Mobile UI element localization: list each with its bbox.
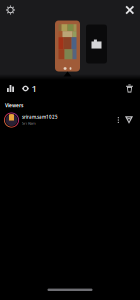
staticText: sriram.sam1025 xyxy=(22,114,58,120)
staticText: 1 xyxy=(31,82,36,95)
button[interactable]: sriram.sam1025 xyxy=(0,111,140,128)
button[interactable]: Story settings xyxy=(1,0,20,19)
button[interactable]: Close xyxy=(120,1,139,19)
button[interactable]: 1 view xyxy=(20,78,38,99)
button[interactable]: Delete story xyxy=(120,81,139,95)
staticText: Viewers xyxy=(5,102,23,108)
button[interactable]: Your story xyxy=(55,20,80,71)
staticText: Sri Ram xyxy=(22,121,36,126)
button[interactable]: Add to your story xyxy=(86,20,107,63)
button[interactable]: Insights xyxy=(1,81,20,96)
